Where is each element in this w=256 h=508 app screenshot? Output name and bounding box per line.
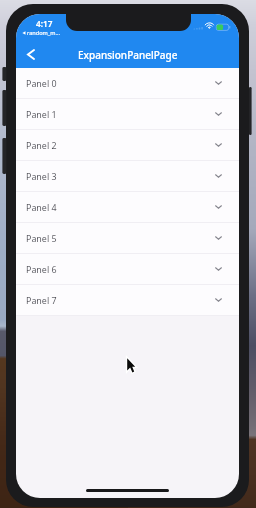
button[interactable]: Panel 3 bbox=[16, 161, 239, 191]
staticText: Panel 0 bbox=[26, 77, 57, 89]
staticText: Panel 4 bbox=[26, 201, 57, 213]
staticText: Panel 6 bbox=[26, 263, 57, 275]
staticText: Panel 2 bbox=[26, 139, 57, 151]
button[interactable]: Panel 2 bbox=[16, 130, 239, 160]
staticText: Panel 5 bbox=[26, 232, 57, 244]
staticText: Panel 1 bbox=[26, 108, 57, 120]
button[interactable]: Panel 5 bbox=[16, 223, 239, 253]
staticText: Panel 3 bbox=[26, 170, 57, 182]
button[interactable]: Back bbox=[16, 43, 46, 65]
button[interactable]: Panel 7 bbox=[16, 285, 239, 315]
staticText: ExpansionPanelPage bbox=[78, 48, 178, 62]
button[interactable]: Panel 4 bbox=[16, 192, 239, 222]
button[interactable]: Panel 1 bbox=[16, 99, 239, 129]
staticText: random_m... bbox=[27, 29, 61, 37]
staticText: 4:17 bbox=[36, 18, 53, 29]
button[interactable]: Panel 6 bbox=[16, 254, 239, 284]
staticText: Panel 7 bbox=[26, 294, 57, 306]
button[interactable]: Panel 0 bbox=[16, 68, 239, 98]
